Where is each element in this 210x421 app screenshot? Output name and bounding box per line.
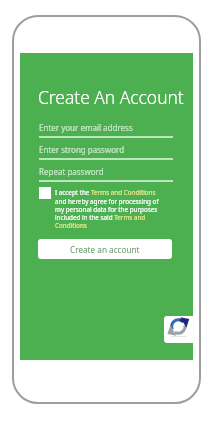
staticText: Enter strong password [39,144,125,155]
staticText: Create an account [70,244,140,255]
staticText: Repeat password [39,166,104,177]
staticText: Enter your email address [39,122,133,133]
staticText: Create An Account [38,85,184,109]
button[interactable]: Create an account [38,239,172,259]
staticText: I accept the Terms and Conditions and he… [55,188,165,229]
